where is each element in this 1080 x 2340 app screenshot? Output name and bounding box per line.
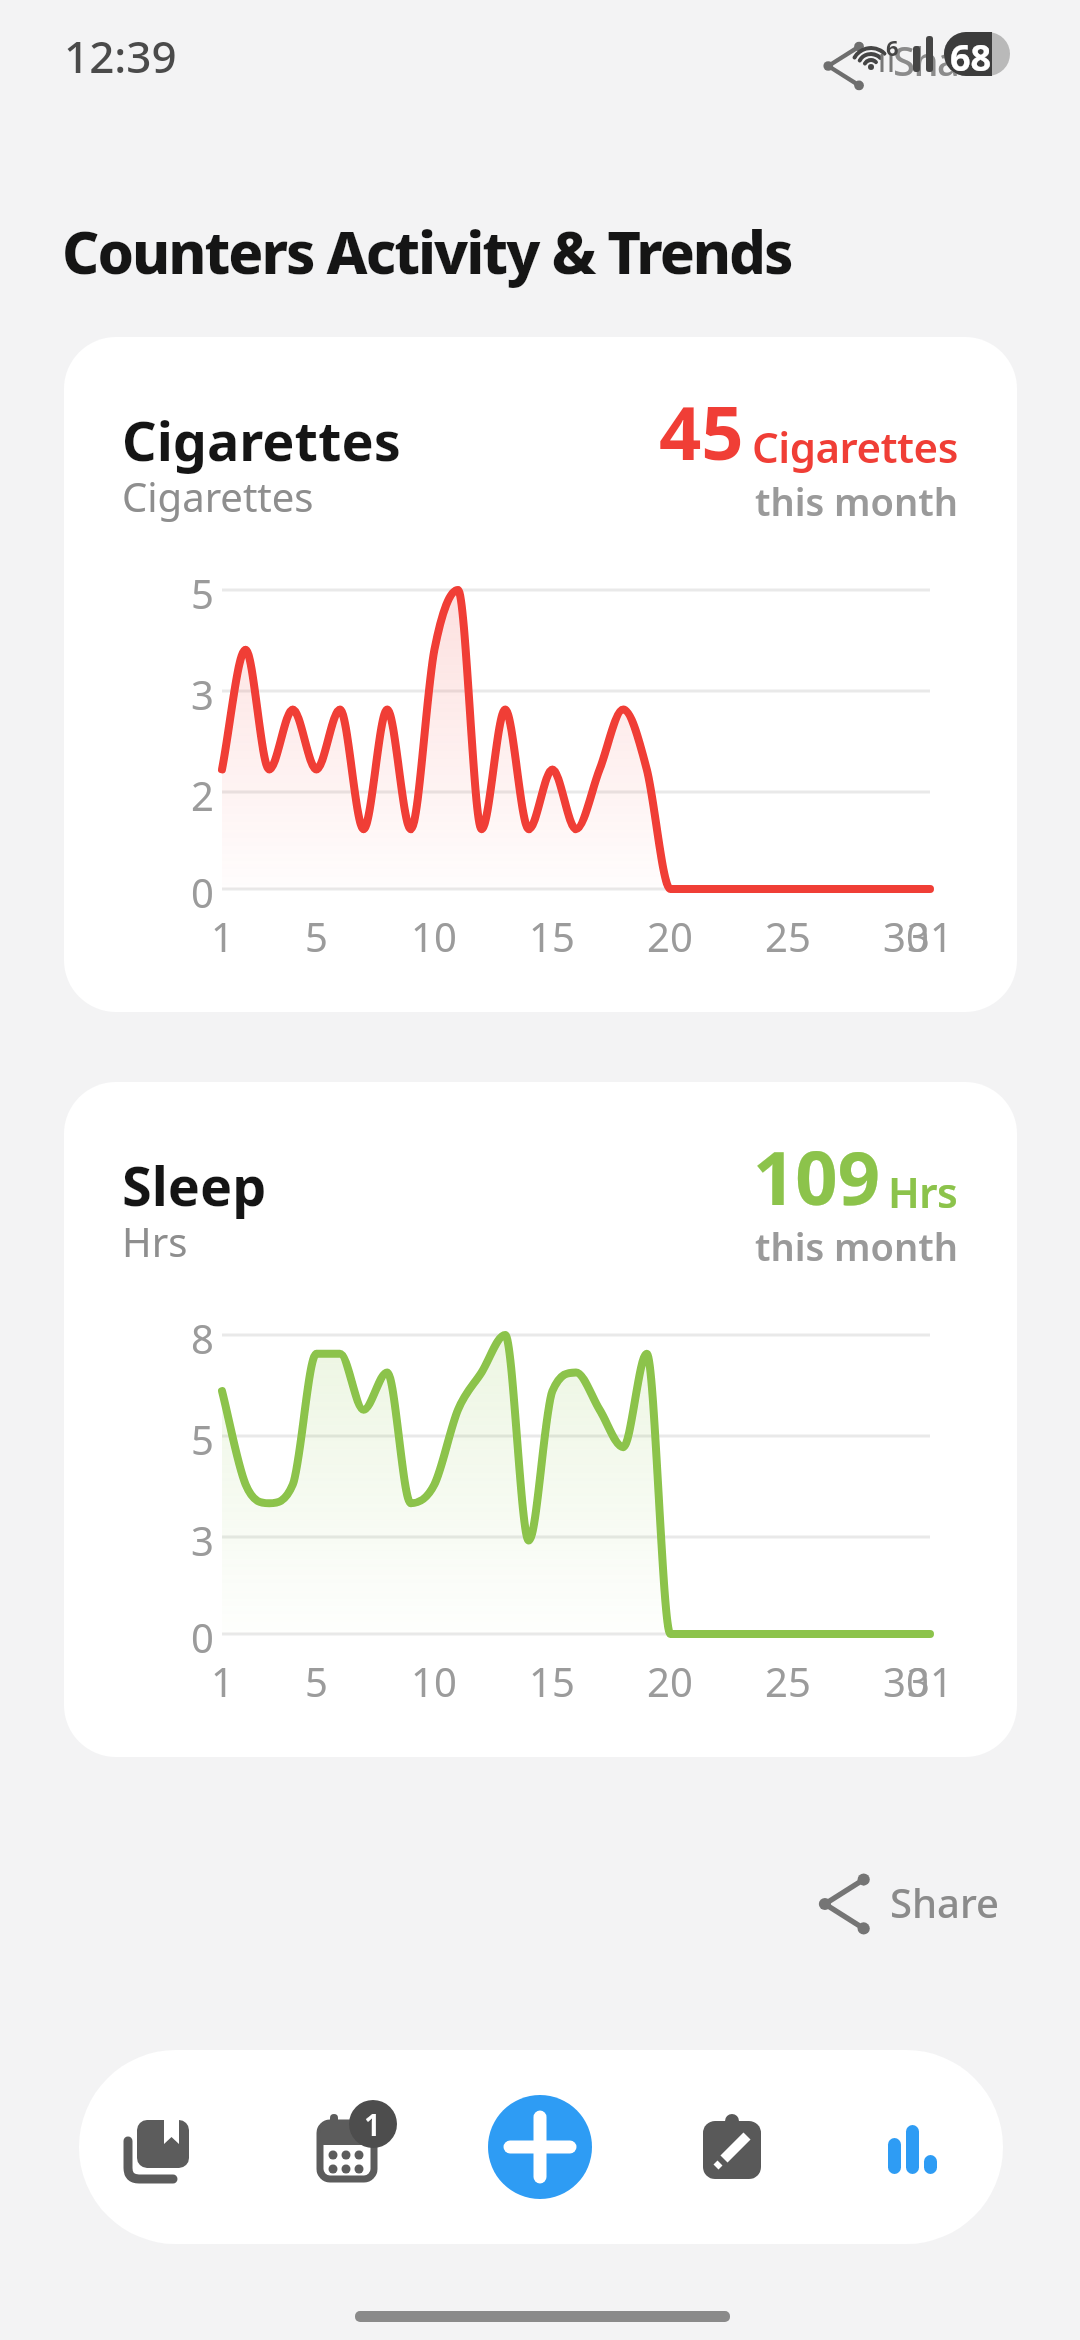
staticText: 15 [529, 909, 575, 957]
staticText: 20 [647, 909, 693, 957]
staticText: Hrs [122, 1214, 188, 1268]
staticText: 45 [659, 381, 744, 482]
button[interactable]: Sleep [64, 1082, 1017, 1757]
button[interactable] [868, 2099, 968, 2199]
staticText: Share [893, 33, 995, 87]
staticText: 25 [765, 1654, 811, 1702]
button[interactable] [488, 2095, 592, 2199]
staticText: 30 [883, 1654, 929, 1702]
staticText: 68 [950, 33, 992, 77]
staticText: 0 [191, 865, 214, 913]
staticText: 1 [364, 2104, 382, 2145]
staticText: Share [890, 1875, 1000, 1929]
staticText: Cigarettes [122, 469, 314, 523]
staticText: Sleep [122, 1148, 267, 1222]
staticText: 10 [411, 909, 457, 957]
staticText: 31 [907, 909, 953, 957]
staticText: Cigarettes [122, 403, 401, 477]
staticText: 3 [191, 1513, 214, 1561]
staticText: Cigarettes [752, 418, 958, 475]
button[interactable] [108, 2110, 208, 2210]
button[interactable] [691, 2109, 791, 2209]
staticText: 109 [753, 1126, 880, 1227]
staticText: 5 [305, 1654, 328, 1702]
staticText: 31 [907, 1654, 953, 1702]
staticText: 3 [191, 667, 214, 715]
staticText: 15 [529, 1654, 575, 1702]
staticText: 1 [211, 1654, 234, 1702]
staticText: Counters Activity & Trends [62, 212, 792, 291]
staticText: 20 [647, 1654, 693, 1702]
staticText: 10 [411, 1654, 457, 1702]
staticText: Hrs [888, 1163, 958, 1220]
staticText: 30 [883, 909, 929, 957]
button[interactable] [300, 2099, 400, 2199]
button[interactable] [820, 30, 1000, 100]
staticText: 5 [191, 566, 214, 614]
button[interactable]: Cigarettes [64, 337, 1017, 1012]
staticText: 8 [191, 1311, 214, 1359]
staticText: 5 [191, 1412, 214, 1460]
button[interactable]: Share [818, 1870, 1000, 1934]
staticText: this month [755, 1220, 958, 1264]
staticText: 25 [765, 909, 811, 957]
staticText: 2 [191, 768, 214, 816]
staticText: 12:39 [64, 26, 177, 86]
staticText: 1 [211, 909, 234, 957]
staticText: 6 [886, 32, 899, 58]
staticText: this month [755, 475, 958, 519]
staticText: 0 [191, 1610, 214, 1658]
staticText: 5 [305, 909, 328, 957]
